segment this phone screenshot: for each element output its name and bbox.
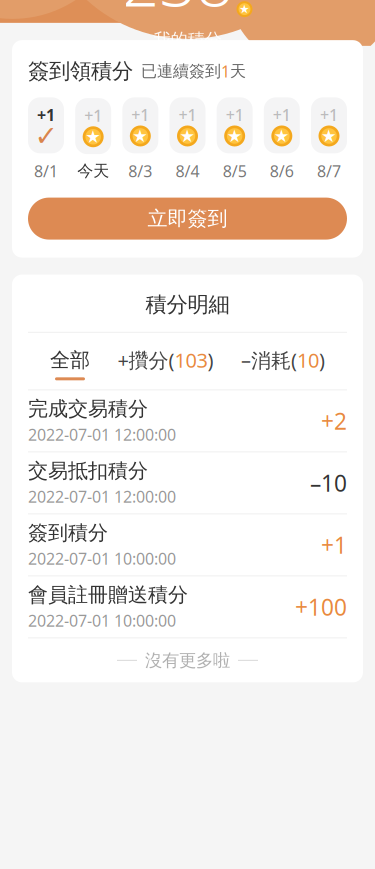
staticText: +1	[273, 104, 291, 125]
staticText: +2	[321, 406, 347, 436]
staticText: 沒有更多啦	[145, 650, 230, 671]
staticText: ★	[239, 2, 250, 16]
staticText: 2022-07-01 12:00:00	[28, 424, 176, 445]
staticText: 完成交易積分	[28, 396, 148, 421]
staticText: 103	[174, 347, 207, 373]
staticText: ★	[132, 126, 148, 146]
staticText: 全部	[50, 348, 90, 372]
staticText: 10	[297, 347, 319, 373]
staticText: +1	[321, 530, 347, 560]
staticText: 積分明細	[145, 292, 229, 318]
staticText: 8/5	[223, 160, 247, 181]
staticText: ★	[227, 126, 243, 146]
staticText: ★	[321, 126, 337, 146]
staticText: 天	[230, 61, 246, 81]
staticText: 交易抵扣積分	[28, 458, 148, 483]
staticText: +1	[131, 104, 149, 125]
staticText: +100	[295, 592, 347, 622]
staticText: 簽到積分	[28, 520, 108, 545]
staticText: 立即簽到	[147, 206, 227, 231]
staticText: 2022-07-01 10:00:00	[28, 610, 176, 631]
staticText: ✓	[34, 120, 57, 152]
staticText: 8/1	[34, 160, 58, 181]
staticText: +1	[84, 105, 102, 126]
staticText: 2022-07-01 12:00:00	[28, 486, 176, 507]
staticText: 8/7	[317, 160, 341, 181]
staticText: )	[207, 347, 213, 373]
staticText: 今天	[77, 161, 109, 181]
staticText: +1	[178, 104, 196, 125]
staticText: ★	[179, 126, 195, 146]
staticText: 1	[221, 61, 230, 82]
staticText: 已連續簽到	[141, 61, 221, 81]
staticText: 2022-07-01 10:00:00	[28, 548, 176, 569]
staticText: ★	[85, 127, 101, 147]
staticText: 238	[122, 0, 233, 24]
staticText: 8/3	[128, 160, 152, 181]
staticText: 8/4	[175, 160, 199, 181]
staticText: 簽到領積分	[28, 58, 133, 84]
staticText: 我的積分	[153, 29, 221, 50]
staticText: 會員註冊贈送積分	[28, 582, 188, 607]
staticText: +1	[226, 104, 244, 125]
staticText: +攢分(	[117, 347, 174, 373]
staticText: )	[319, 347, 325, 373]
staticText: ★	[274, 126, 290, 146]
staticText: –10	[310, 468, 347, 498]
staticText: 8/6	[270, 160, 294, 181]
staticText: –消耗(	[241, 347, 297, 373]
staticText: +1	[37, 104, 55, 125]
button[interactable]: +攢分(	[113, 343, 217, 381]
button[interactable]: 立即簽到	[28, 198, 347, 240]
button[interactable]: 全部	[46, 344, 94, 380]
button[interactable]: –消耗(	[237, 343, 329, 381]
staticText: +1	[320, 104, 338, 125]
